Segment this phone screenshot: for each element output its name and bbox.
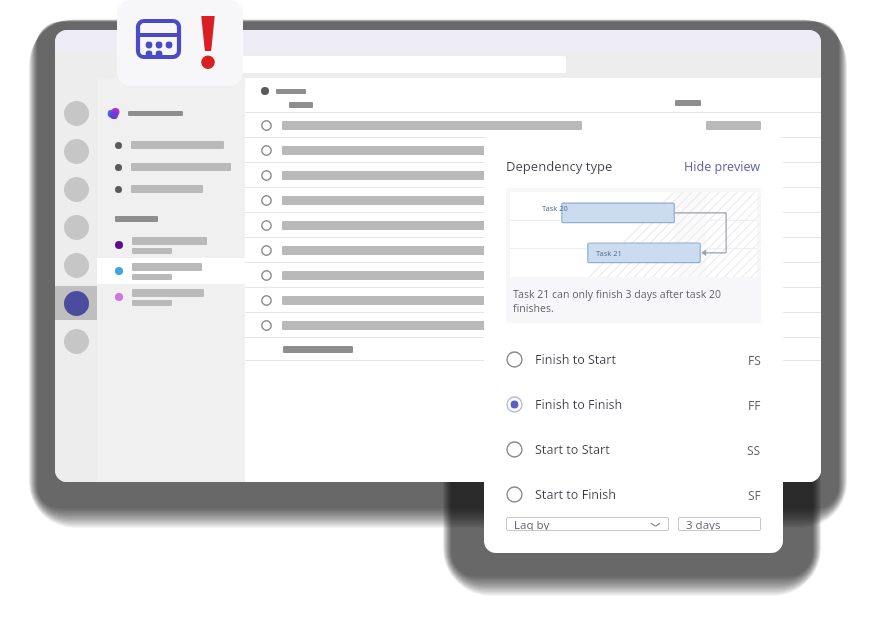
- button[interactable]: [245, 188, 821, 212]
- button[interactable]: 3 days: [678, 517, 761, 531]
- button[interactable]: [97, 258, 245, 284]
- staticText: Finish to Finish: [535, 396, 623, 413]
- button[interactable]: [97, 102, 245, 124]
- staticText: SS: [747, 442, 761, 458]
- staticText: Task 21 can only finish 3 days after tas…: [513, 287, 754, 315]
- button[interactable]: [97, 134, 245, 156]
- staticText: Finish to Start: [535, 351, 617, 368]
- staticText: Task 20: [542, 203, 568, 213]
- button[interactable]: [245, 213, 821, 237]
- button[interactable]: Selected app: [55, 286, 97, 320]
- button[interactable]: Lag by: [506, 517, 669, 531]
- button[interactable]: Start to Finish: [506, 472, 761, 517]
- button[interactable]: [245, 113, 821, 137]
- button[interactable]: Calendar alert: [117, 0, 243, 86]
- button[interactable]: Finish to Finish: [506, 382, 761, 427]
- staticText: Task 21: [596, 248, 622, 258]
- button[interactable]: [97, 178, 245, 200]
- staticText: Dependency type: [506, 157, 613, 175]
- button[interactable]: [245, 288, 821, 312]
- button[interactable]: Start to Start: [506, 427, 761, 472]
- staticText: 3 days: [686, 517, 721, 531]
- staticText: Hide preview: [684, 158, 761, 175]
- button[interactable]: [245, 263, 821, 287]
- button[interactable]: [245, 163, 821, 187]
- button[interactable]: [245, 313, 821, 337]
- button[interactable]: [97, 156, 245, 178]
- button[interactable]: App 3: [55, 210, 97, 244]
- staticText: SF: [748, 487, 761, 503]
- button[interactable]: [245, 138, 821, 162]
- button[interactable]: App 6: [55, 324, 97, 358]
- staticText: Start to Finish: [535, 486, 617, 503]
- button[interactable]: [97, 232, 245, 258]
- button[interactable]: App 2: [55, 172, 97, 206]
- staticText: Lag by: [514, 517, 550, 531]
- button[interactable]: [97, 284, 245, 310]
- button[interactable]: App 0: [55, 96, 97, 130]
- staticText: FS: [748, 352, 761, 368]
- button[interactable]: Finish to Start: [506, 337, 761, 382]
- button[interactable]: App 1: [55, 134, 97, 168]
- button[interactable]: Hide preview: [684, 158, 761, 175]
- staticText: FF: [748, 397, 761, 413]
- button[interactable]: [245, 238, 821, 262]
- staticText: Start to Start: [535, 441, 610, 458]
- button[interactable]: App 4: [55, 248, 97, 282]
